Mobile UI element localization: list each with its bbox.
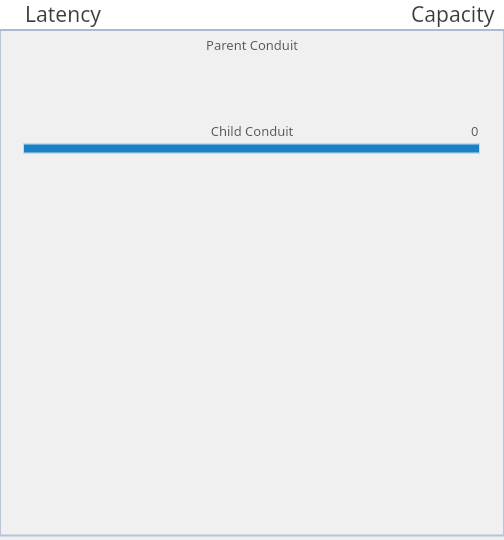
button[interactable]: Latency (25, 0, 101, 29)
staticText: 0 (471, 122, 479, 140)
staticText: Latency (25, 0, 101, 29)
staticText: Child Conduit (0, 122, 504, 140)
button[interactable]: Capacity (411, 0, 495, 29)
button[interactable]: Child Conduit capacity bar (0, 143, 504, 154)
button[interactable]: Parent Conduit (0, 36, 504, 54)
staticText: Parent Conduit (0, 36, 504, 54)
staticText: Capacity (411, 0, 495, 29)
button[interactable]: Child Conduit (0, 122, 504, 140)
